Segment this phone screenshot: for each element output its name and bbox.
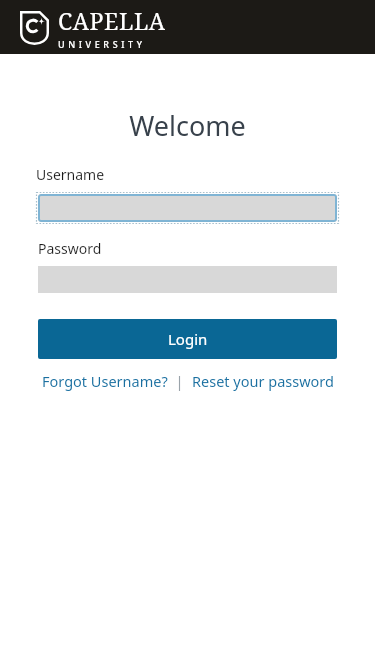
- button[interactable]: [36, 192, 339, 224]
- staticText: UNIVERSITY: [58, 38, 146, 50]
- staticText: Password: [38, 239, 102, 258]
- staticText: |: [168, 371, 192, 391]
- staticText: Username: [36, 165, 105, 184]
- staticText: Forgot Username?: [42, 371, 168, 391]
- staticText: Reset your password: [192, 371, 334, 391]
- button[interactable]: Reset your password: [192, 371, 334, 391]
- button[interactable]: Forgot Username?: [42, 371, 168, 391]
- other: Capella University shield: [20, 11, 49, 45]
- staticText: CAPELLA: [58, 5, 166, 36]
- button[interactable]: Login: [38, 319, 337, 359]
- staticText: Welcome: [0, 107, 375, 144]
- staticText: Login: [168, 329, 208, 349]
